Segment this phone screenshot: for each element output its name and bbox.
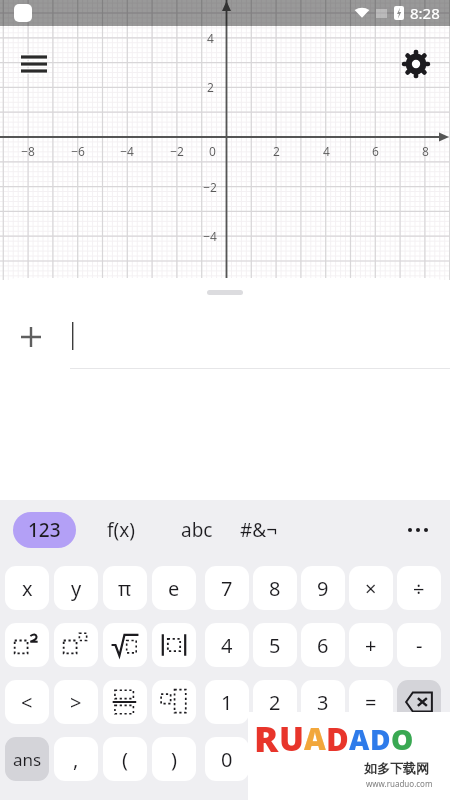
staticText: 8 [269, 575, 281, 602]
staticText: < [21, 689, 33, 716]
button[interactable]: Square root [103, 623, 147, 667]
staticText: O [391, 720, 414, 758]
staticText: −6 [71, 143, 85, 159]
button[interactable]: - [397, 623, 441, 667]
staticText: 4 [323, 143, 330, 159]
button[interactable]: 4 [205, 623, 249, 667]
button[interactable]: ( [103, 737, 147, 781]
staticText: 2 [269, 689, 281, 716]
staticText: 4 [221, 632, 233, 659]
button[interactable]: = [349, 680, 393, 724]
staticText: 3 [317, 689, 329, 716]
staticText: −2 [203, 179, 217, 195]
staticText: R [254, 714, 279, 763]
button[interactable]: abc [170, 512, 224, 548]
staticText: ÷ [413, 575, 425, 602]
staticText: , [73, 746, 79, 773]
button[interactable]: Fraction [103, 680, 147, 724]
staticText: f(x) [107, 517, 135, 543]
button[interactable]: f(x) [94, 512, 148, 548]
staticText: 6 [372, 143, 379, 159]
button[interactable]: × [349, 566, 393, 610]
button[interactable] [62, 306, 450, 368]
staticText: - [416, 632, 423, 659]
staticText: ( [122, 746, 128, 773]
button[interactable]: 8 [253, 566, 297, 610]
button[interactable]: Power [54, 623, 98, 667]
button[interactable]: Settings [396, 44, 436, 84]
staticText: 8:28 [410, 3, 440, 23]
staticText: 123 [28, 517, 61, 543]
staticText: D [370, 720, 391, 758]
staticText: x [22, 575, 33, 602]
staticText: 0 [221, 746, 233, 773]
button[interactable]: Add expression [12, 318, 50, 356]
button[interactable]: , [54, 737, 98, 781]
button[interactable]: Square [5, 623, 49, 667]
staticText: A [304, 718, 326, 759]
staticText: × [365, 575, 377, 602]
button[interactable]: 123 [13, 512, 76, 548]
button[interactable]: π [103, 566, 147, 610]
button[interactable]: . [253, 737, 297, 781]
button[interactable]: % [301, 737, 345, 781]
button[interactable]: ↵ [397, 737, 441, 781]
staticText: 5 [269, 632, 281, 659]
staticText: −2 [170, 143, 184, 159]
button[interactable]: Absolute value [152, 623, 196, 667]
staticText: 9 [317, 575, 329, 602]
staticText: π [118, 575, 132, 602]
button[interactable]: ! [349, 737, 393, 781]
staticText: 如多下载网 [364, 760, 429, 776]
button[interactable]: x [5, 566, 49, 610]
staticText: A [349, 720, 370, 758]
staticText: > [70, 689, 82, 716]
button[interactable]: ÷ [397, 566, 441, 610]
staticText: −4 [120, 143, 134, 159]
staticText: −4 [203, 228, 217, 244]
staticText: = [365, 689, 377, 716]
button[interactable]: < [5, 680, 49, 724]
staticText: 4 [207, 30, 214, 46]
button[interactable]: #&¬ [232, 512, 286, 548]
button[interactable]: Backspace [397, 680, 441, 724]
staticText: . [272, 746, 278, 773]
button[interactable]: 6 [301, 623, 345, 667]
button[interactable]: 9 [301, 566, 345, 610]
staticText: % [315, 746, 332, 773]
button[interactable]: 0 [205, 737, 249, 781]
button[interactable]: 5 [253, 623, 297, 667]
staticText: e [168, 575, 180, 602]
staticText: 7 [221, 575, 233, 602]
button[interactable]: More options [398, 512, 438, 548]
staticText: 0 [209, 143, 216, 159]
button[interactable]: 7 [205, 566, 249, 610]
button[interactable]: e [152, 566, 196, 610]
button[interactable]: > [54, 680, 98, 724]
staticText: 1 [221, 689, 233, 716]
staticText: ↵ [411, 748, 428, 771]
button[interactable]: ans [5, 737, 49, 781]
button[interactable]: Matrix [152, 680, 196, 724]
staticText: abc [181, 517, 213, 543]
staticText: U [279, 716, 304, 761]
button[interactable]: y [54, 566, 98, 610]
button[interactable]: 3 [301, 680, 345, 724]
staticText: 6 [317, 632, 329, 659]
button[interactable]: 2 [253, 680, 297, 724]
staticText: −8 [21, 143, 35, 159]
staticText: + [365, 632, 377, 659]
staticText: 8 [422, 143, 429, 159]
button[interactable]: 1 [205, 680, 249, 724]
staticText: ! [368, 746, 374, 773]
button[interactable]: Menu [14, 44, 54, 84]
button[interactable]: + [349, 623, 393, 667]
staticText: ) [171, 746, 177, 773]
staticText: 2 [273, 143, 280, 159]
staticText: 2 [207, 79, 214, 95]
staticText: ans [13, 748, 42, 771]
staticText: D [326, 718, 349, 760]
button[interactable]: ) [152, 737, 196, 781]
staticText: y [71, 575, 82, 602]
staticText: #&¬ [240, 517, 278, 543]
